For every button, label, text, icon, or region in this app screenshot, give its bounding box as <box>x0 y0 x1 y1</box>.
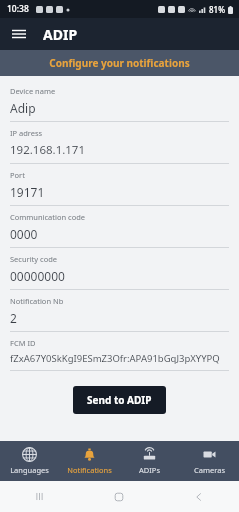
button[interactable]: Back <box>159 481 239 512</box>
button[interactable]: Cameras <box>179 441 239 481</box>
staticText: 10:38 <box>7 3 29 15</box>
staticText: Port <box>10 170 25 180</box>
button[interactable]: Open navigation menu <box>6 21 32 47</box>
button[interactable]: Home <box>79 481 159 512</box>
staticText: 19171 <box>10 184 45 200</box>
staticText: IP adress <box>10 128 43 138</box>
staticText: Notifications <box>67 465 112 475</box>
staticText: 0000 <box>10 226 38 242</box>
staticText: Security code <box>10 254 58 264</box>
staticText: Send to ADIP <box>87 393 152 407</box>
button[interactable]: Send to ADIP <box>73 386 166 414</box>
staticText: 192.168.1.171 <box>10 142 86 158</box>
staticText: 2 <box>10 310 17 326</box>
staticText: Device name <box>10 86 56 96</box>
staticText: Languages <box>10 465 49 475</box>
staticText: 00000000 <box>10 268 65 284</box>
staticText: Communication code <box>10 212 86 222</box>
staticText: Adip <box>10 100 36 116</box>
button[interactable]: Recent apps <box>0 481 79 512</box>
button[interactable]: Notifications <box>59 441 119 481</box>
staticText: Cameras <box>194 465 225 475</box>
staticText: Notification Nb <box>10 296 64 306</box>
button[interactable]: Languages <box>0 441 59 481</box>
staticText: ADIPs <box>139 465 160 475</box>
staticText: ADIP <box>43 25 78 44</box>
staticText: Configure your notifications <box>49 56 190 70</box>
staticText: fZxA67Y0SkKgI9ESmZ3Ofr:APA91bGqJ3pXYYPQ <box>10 352 220 365</box>
staticText: FCM ID <box>10 338 36 348</box>
staticText: 81% <box>209 4 225 15</box>
button[interactable]: ADIPs <box>119 441 179 481</box>
